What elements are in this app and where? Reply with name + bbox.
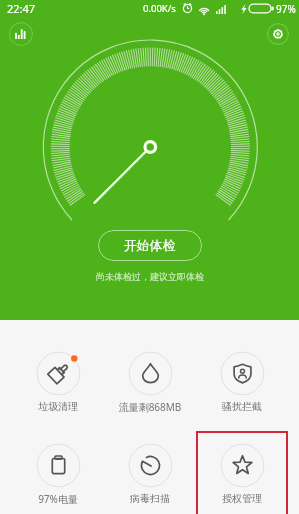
button[interactable]: 流量剩868MB (104, 351, 196, 414)
staticText: 尚未体检过，建议立即体检 (96, 271, 204, 282)
staticText: 病毒扫描 (104, 492, 196, 505)
button[interactable]: 垃圾清理 (12, 351, 104, 413)
button[interactable]: 骚扰拦截 (196, 351, 288, 413)
staticText: 流量剩868MB (104, 400, 196, 414)
button[interactable]: Settings (267, 23, 289, 45)
button[interactable]: 开始体检 (98, 230, 202, 261)
staticText: 22:47 (7, 1, 36, 16)
staticText: 授权管理 (196, 492, 288, 505)
button[interactable]: 病毒扫描 (104, 443, 196, 505)
staticText: 0.00K/s (143, 2, 176, 15)
staticText: 骚扰拦截 (196, 400, 288, 413)
staticText: 97%电量 (12, 492, 104, 506)
staticText: 开始体检 (124, 238, 176, 254)
staticText: 97% (276, 2, 296, 16)
button[interactable]: 授权管理 (196, 443, 288, 505)
staticText: 垃圾清理 (12, 400, 104, 413)
button[interactable]: 97%电量 (12, 443, 104, 506)
button[interactable]: Traffic statistics (9, 22, 33, 46)
